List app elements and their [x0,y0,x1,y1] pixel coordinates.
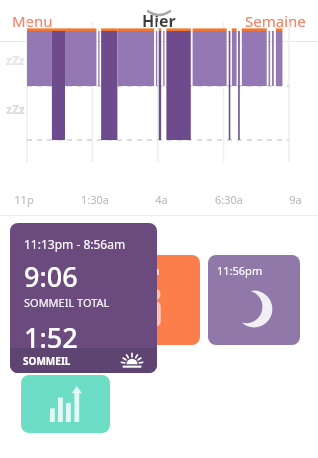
staticText: Hier [142,10,176,32]
button[interactable]: 11:13pm - 8:56am [10,223,157,373]
staticText: 11:13pm - 8:56am [24,236,126,252]
staticText: Menu [12,11,53,31]
button[interactable]: Menu [0,5,61,37]
button[interactable]: Heure de coucher [208,255,300,345]
staticText: 6:30a [215,192,243,207]
button[interactable]: Tendance [21,375,110,433]
staticText: 11:56pm [217,263,263,278]
staticText: 11p [14,192,34,207]
staticText: 7:50am [121,263,160,278]
staticText: zZz [6,101,25,117]
staticText: SOMMEIL TOTAL [24,295,110,310]
staticText: Semaine [245,11,306,31]
staticText: 9:06 [24,258,78,295]
staticText: 4a [155,192,168,207]
staticText: zZz [6,52,25,68]
button[interactable]: Activité [112,255,200,345]
staticText: 9a [289,192,302,207]
staticText: SOMMEIL [23,354,71,368]
staticText: 1:52 [24,319,78,356]
staticText: 1:30a [81,192,109,207]
button[interactable]: Semaine [237,5,318,37]
staticText: SOMMEIL PROFOND [24,356,130,371]
